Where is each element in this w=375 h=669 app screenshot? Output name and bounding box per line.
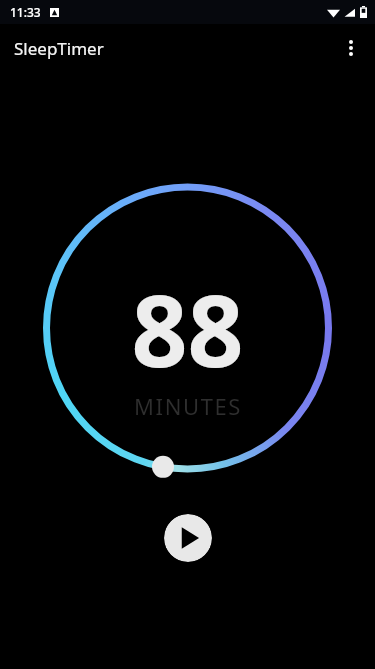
staticText: 11:33 xyxy=(10,4,41,20)
staticText: 88 xyxy=(131,262,244,395)
button[interactable]: More options xyxy=(331,28,371,68)
button[interactable]: Start timer xyxy=(164,514,212,562)
staticText: MINUTES xyxy=(134,391,242,421)
staticText: SleepTimer xyxy=(14,37,104,60)
